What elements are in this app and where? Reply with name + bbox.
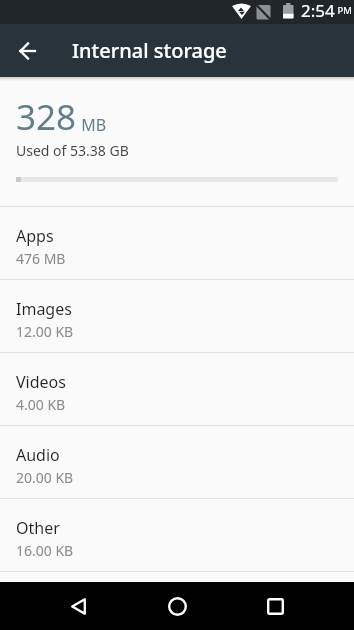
- button[interactable]: [16, 39, 40, 63]
- staticText: Used of 53.38 GB: [16, 141, 129, 160]
- staticText: Images: [16, 298, 72, 320]
- button[interactable]: [54, 582, 102, 630]
- button[interactable]: [153, 582, 201, 630]
- staticText: Internal storage: [72, 37, 227, 64]
- staticText: 12.00 KB: [16, 322, 74, 341]
- staticText: Other: [16, 517, 60, 539]
- staticText: 476 MB: [16, 249, 66, 268]
- button[interactable]: Videos: [0, 353, 354, 425]
- staticText: 328: [16, 93, 77, 141]
- button[interactable]: Images: [0, 280, 354, 352]
- staticText: Audio: [16, 444, 60, 466]
- staticText: PM: [335, 4, 352, 17]
- staticText: Apps: [16, 225, 54, 247]
- button[interactable]: Apps: [0, 207, 354, 279]
- button[interactable]: [251, 582, 299, 630]
- staticText: 4.00 KB: [16, 395, 66, 414]
- staticText: Videos: [16, 371, 66, 393]
- button[interactable]: Audio: [0, 426, 354, 498]
- staticText: 2:54: [301, 0, 335, 22]
- staticText: 16.00 KB: [16, 541, 74, 560]
- button[interactable]: Other: [0, 499, 354, 571]
- staticText: 20.00 KB: [16, 468, 74, 487]
- staticText: MB: [77, 114, 107, 136]
